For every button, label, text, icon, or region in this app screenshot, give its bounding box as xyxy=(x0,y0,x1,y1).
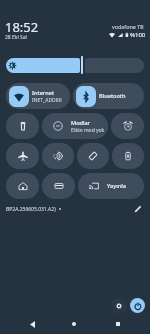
button[interactable]: Auto-rotate xyxy=(77,143,109,169)
staticText: %100 xyxy=(130,31,146,39)
button[interactable]: Flashlight xyxy=(6,113,39,139)
staticText: Modlar xyxy=(71,119,91,127)
staticText: Bluetooth xyxy=(99,92,126,100)
staticText: 18:52 xyxy=(5,18,39,36)
staticText: Etkin mod yok xyxy=(71,127,105,134)
button[interactable]: Yayınla xyxy=(78,173,144,199)
staticText: Internet xyxy=(32,89,55,97)
button[interactable]: Power xyxy=(130,298,145,313)
staticText: vodafone TR xyxy=(112,23,144,30)
button[interactable]: Edit tiles xyxy=(131,202,145,216)
button[interactable]: Sound xyxy=(42,143,74,169)
staticText: 28 Eki Sal xyxy=(5,34,27,41)
staticText: BP2A.250605.031.A2) xyxy=(6,206,56,213)
button[interactable]: Alarm xyxy=(111,113,144,139)
button[interactable]: Battery saver xyxy=(112,143,144,169)
button[interactable]: Wallet xyxy=(42,173,75,199)
button[interactable]: Airplane mode xyxy=(6,143,39,169)
button[interactable]: Home xyxy=(66,316,82,332)
button[interactable]: Recent apps xyxy=(110,316,126,332)
button[interactable]: Device controls xyxy=(6,173,39,199)
button[interactable]: Bluetooth xyxy=(73,83,144,109)
button[interactable]: Internet xyxy=(6,83,70,109)
button[interactable]: Modlar xyxy=(42,113,108,139)
staticText: INET_ADD80 xyxy=(32,97,62,104)
staticText: Yayınla xyxy=(107,182,126,190)
button[interactable]: Brightness xyxy=(0,56,150,74)
button[interactable]: Back xyxy=(24,316,40,332)
button[interactable]: Settings xyxy=(111,298,127,314)
